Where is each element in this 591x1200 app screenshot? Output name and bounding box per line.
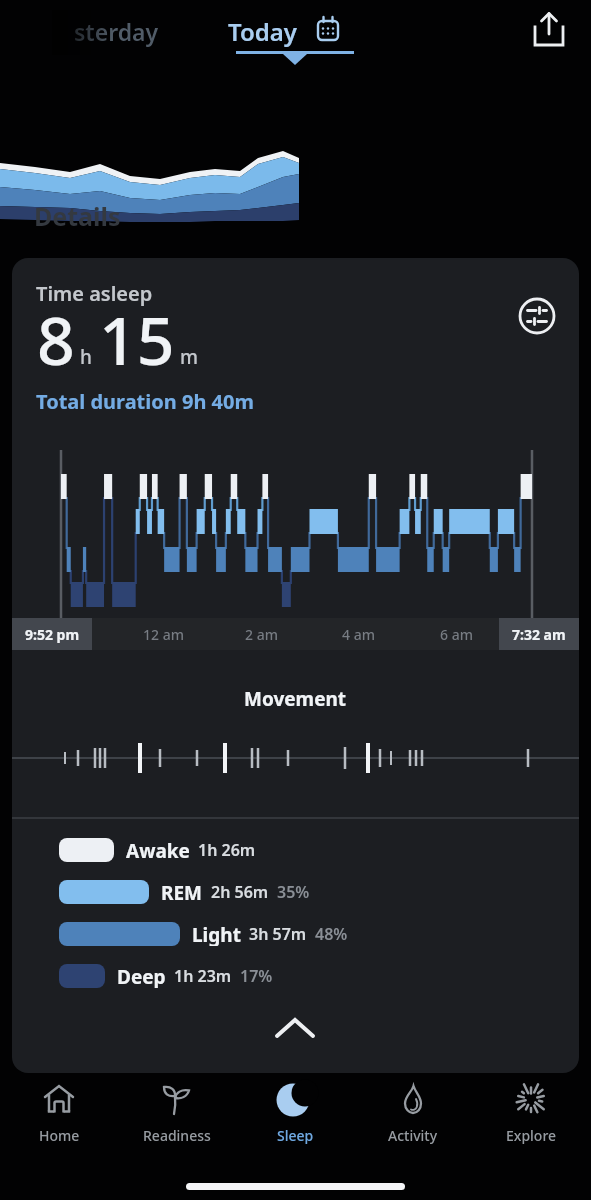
staticText: 48% — [315, 923, 348, 945]
button[interactable]: Readiness — [127, 1078, 227, 1156]
staticText: 6 am — [440, 625, 473, 644]
staticText: 1h 23m — [174, 965, 232, 987]
staticText: Explore — [506, 1126, 557, 1145]
button[interactable]: Sleep — [245, 1078, 345, 1156]
staticText: Sleep — [277, 1126, 314, 1145]
staticText: Deep — [117, 964, 166, 988]
button[interactable] — [531, 10, 567, 50]
staticText: 35% — [277, 881, 310, 903]
staticText: h — [80, 344, 92, 370]
button[interactable]: Today — [220, 6, 360, 62]
staticText: 1h 26m — [198, 839, 256, 861]
staticText: Activity — [388, 1126, 438, 1145]
staticText: 15 — [99, 294, 175, 384]
staticText: Today — [228, 15, 297, 48]
staticText: 2h 56m — [211, 881, 269, 903]
button[interactable]: Activity — [363, 1078, 463, 1156]
staticText: 4 am — [342, 625, 375, 644]
staticText: sterday — [74, 16, 159, 47]
staticText: Details — [34, 199, 121, 233]
staticText: 7:32 am — [512, 625, 566, 644]
staticText: Time asleep — [36, 280, 153, 307]
staticText: 12 am — [143, 625, 184, 644]
staticText: REM — [161, 880, 203, 904]
button[interactable] — [517, 296, 557, 336]
staticText: Awake — [126, 838, 190, 862]
button[interactable] — [265, 1008, 325, 1050]
staticText: 3h 57m — [249, 923, 307, 945]
staticText: Movement — [244, 686, 347, 712]
staticText: Total duration 9h 40m — [36, 388, 254, 415]
button[interactable]: Explore — [481, 1078, 581, 1156]
button[interactable]: Home — [9, 1078, 109, 1156]
staticText: 2 am — [245, 625, 278, 644]
staticText: 17% — [240, 965, 273, 987]
staticText: m — [180, 344, 198, 370]
staticText: Home — [39, 1126, 80, 1145]
staticText: 9:52 pm — [25, 625, 80, 644]
staticText: Light — [192, 922, 241, 946]
staticText: 8 — [37, 294, 75, 384]
staticText: Readiness — [143, 1126, 211, 1145]
